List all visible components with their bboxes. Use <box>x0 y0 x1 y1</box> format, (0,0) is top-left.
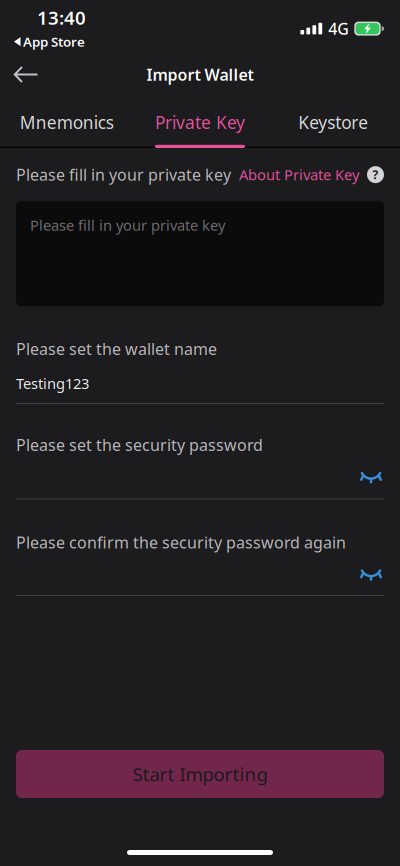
staticText: Import Wallet <box>146 64 253 85</box>
staticText: Please set the security password <box>16 434 263 455</box>
button[interactable]: Show password <box>360 565 384 582</box>
staticText: 4G <box>328 18 349 39</box>
staticText: 13:40 <box>37 5 86 30</box>
staticText: ? <box>372 167 378 183</box>
staticText: Keystore <box>298 111 368 134</box>
staticText: Mnemonics <box>20 111 114 134</box>
staticText: Please fill in your private key <box>16 164 231 185</box>
button[interactable]: About Private Key <box>239 165 384 184</box>
staticText: App Store <box>23 33 85 50</box>
button[interactable]: Mnemonics <box>0 97 133 149</box>
staticText: Please confirm the security password aga… <box>16 532 346 553</box>
button[interactable]: Private Key <box>133 97 267 149</box>
staticText: About Private Key <box>239 165 359 184</box>
staticText: Please fill in your private key <box>30 215 225 235</box>
staticText: Please set the wallet name <box>16 338 217 359</box>
button[interactable]: Back <box>0 54 52 94</box>
button[interactable]: Start Importing <box>16 750 384 798</box>
button[interactable]: Show password <box>360 467 384 484</box>
staticText: Private Key <box>155 111 245 134</box>
staticText: Testing123 <box>16 373 89 393</box>
staticText: Start Importing <box>132 762 267 786</box>
button[interactable]: Keystore <box>267 97 400 149</box>
